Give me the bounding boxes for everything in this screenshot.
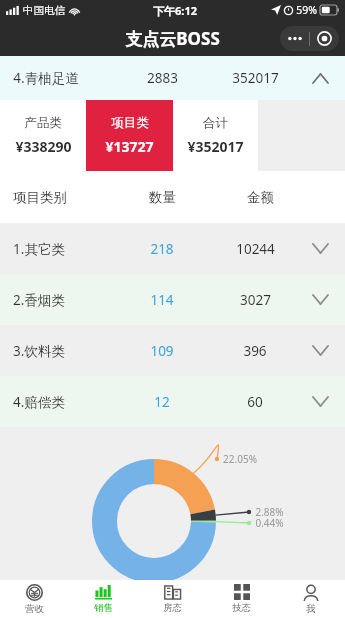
- button[interactable]: 我: [276, 580, 345, 618]
- button[interactable]: 项目类: [86, 100, 173, 171]
- staticText: 销售: [94, 602, 113, 614]
- staticText: 合计: [203, 115, 228, 131]
- staticText: 4.青柚足道: [13, 69, 79, 87]
- staticText: 项目类: [111, 115, 149, 131]
- staticText: 1.其它类: [13, 240, 65, 258]
- button[interactable]: 产品类: [0, 100, 86, 171]
- staticText: 我: [306, 603, 316, 615]
- staticText: 项目类别: [13, 189, 67, 206]
- button[interactable]: 技态: [207, 580, 276, 618]
- staticText: ¥352017: [187, 137, 244, 156]
- staticText: 12: [154, 393, 170, 411]
- staticText: 4.赔偿类: [13, 393, 65, 411]
- staticText: 2.88%: [255, 505, 284, 519]
- staticText: 3.饮料类: [13, 342, 65, 360]
- staticText: 218: [150, 240, 174, 258]
- staticText: 114: [150, 291, 174, 309]
- button[interactable]: 营收: [0, 580, 69, 618]
- staticText: 396: [243, 342, 267, 360]
- staticText: 数量: [149, 189, 176, 206]
- staticText: 10244: [236, 240, 275, 258]
- staticText: 3027: [240, 291, 271, 309]
- staticText: 2.香烟类: [13, 291, 65, 309]
- staticText: 支点云BOSS: [125, 27, 220, 50]
- button[interactable]: 3.饮料类: [0, 325, 345, 376]
- button[interactable]: 1.其它类: [0, 223, 345, 274]
- button[interactable]: 合计: [173, 100, 258, 171]
- button[interactable]: 房态: [138, 580, 207, 618]
- staticText: 59%: [296, 3, 317, 17]
- staticText: 2883: [147, 69, 178, 87]
- button[interactable]: 4.青柚足道: [0, 56, 345, 100]
- staticText: 下午6:12: [153, 3, 197, 18]
- staticText: 产品类: [24, 115, 62, 131]
- button[interactable]: More options: [280, 26, 339, 51]
- staticText: 60: [247, 393, 263, 411]
- staticText: 房态: [163, 602, 182, 614]
- staticText: ¥13727: [105, 137, 154, 156]
- button[interactable]: 4.赔偿类: [0, 376, 345, 427]
- staticText: 技态: [232, 602, 251, 614]
- button[interactable]: 2.香烟类: [0, 274, 345, 325]
- staticText: 金额: [247, 189, 274, 206]
- staticText: 352017: [232, 69, 279, 87]
- staticText: 营收: [25, 603, 44, 615]
- button[interactable]: 销售: [69, 580, 138, 618]
- staticText: 0.44%: [255, 516, 284, 530]
- staticText: 22.05%: [223, 452, 257, 466]
- staticText: ¥338290: [15, 137, 72, 156]
- staticText: 中国电信: [23, 4, 65, 17]
- staticText: 109: [150, 342, 174, 360]
